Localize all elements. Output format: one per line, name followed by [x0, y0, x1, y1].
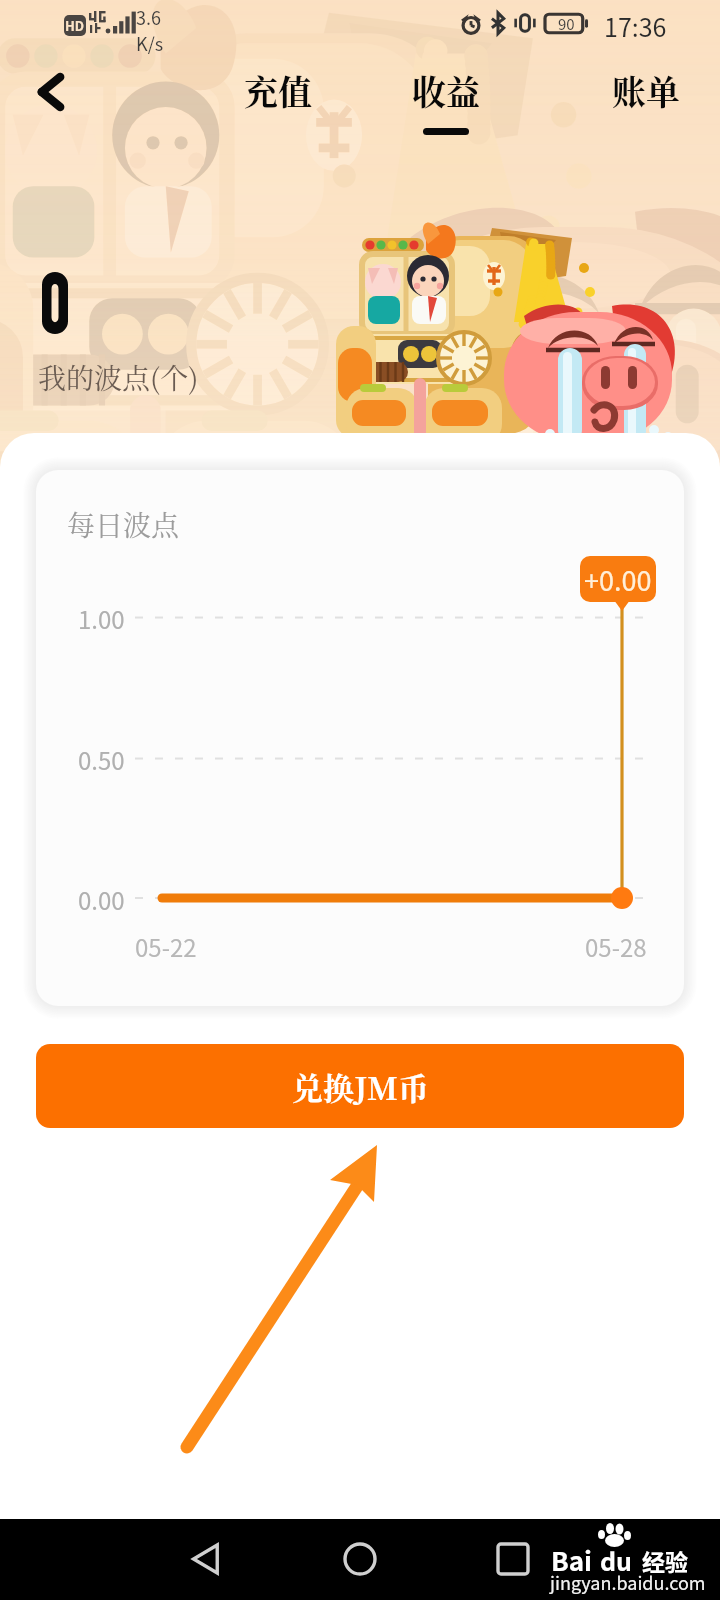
staticText: 1.00	[78, 601, 125, 636]
button[interactable]: Back	[172, 1524, 242, 1594]
staticText: jingyan.baidu.com	[550, 1569, 706, 1595]
staticText: +0.00	[584, 560, 652, 599]
button[interactable]: 账单	[590, 66, 702, 135]
button[interactable]: Back	[22, 62, 82, 122]
staticText: 17:36	[604, 8, 667, 44]
staticText: 兑换JM币	[292, 1064, 429, 1109]
staticText: 每日波点	[67, 504, 180, 544]
staticText: 0.00	[78, 882, 125, 917]
staticText: K/s	[136, 30, 164, 56]
button[interactable]: Home	[325, 1524, 395, 1594]
staticText: du	[600, 1542, 633, 1578]
button[interactable]: 兑换JM币	[36, 1044, 684, 1128]
staticText: 经验	[642, 1544, 688, 1577]
staticText: Bai	[551, 1541, 592, 1579]
staticText: 90	[558, 13, 575, 34]
button[interactable]: Recents	[478, 1524, 548, 1594]
staticText: 收益	[412, 66, 480, 115]
staticText: 我的波点(个)	[38, 357, 199, 397]
staticText: 05-22	[135, 929, 197, 964]
staticText: 充值	[244, 66, 312, 115]
staticText: 3.6	[136, 4, 161, 30]
staticText: HD	[65, 16, 85, 35]
button[interactable]: 收益	[390, 66, 502, 135]
staticText: 账单	[612, 66, 680, 115]
staticText: 0.50	[78, 742, 125, 777]
button[interactable]: 充值	[222, 66, 334, 135]
staticText: 05-28	[585, 929, 647, 964]
